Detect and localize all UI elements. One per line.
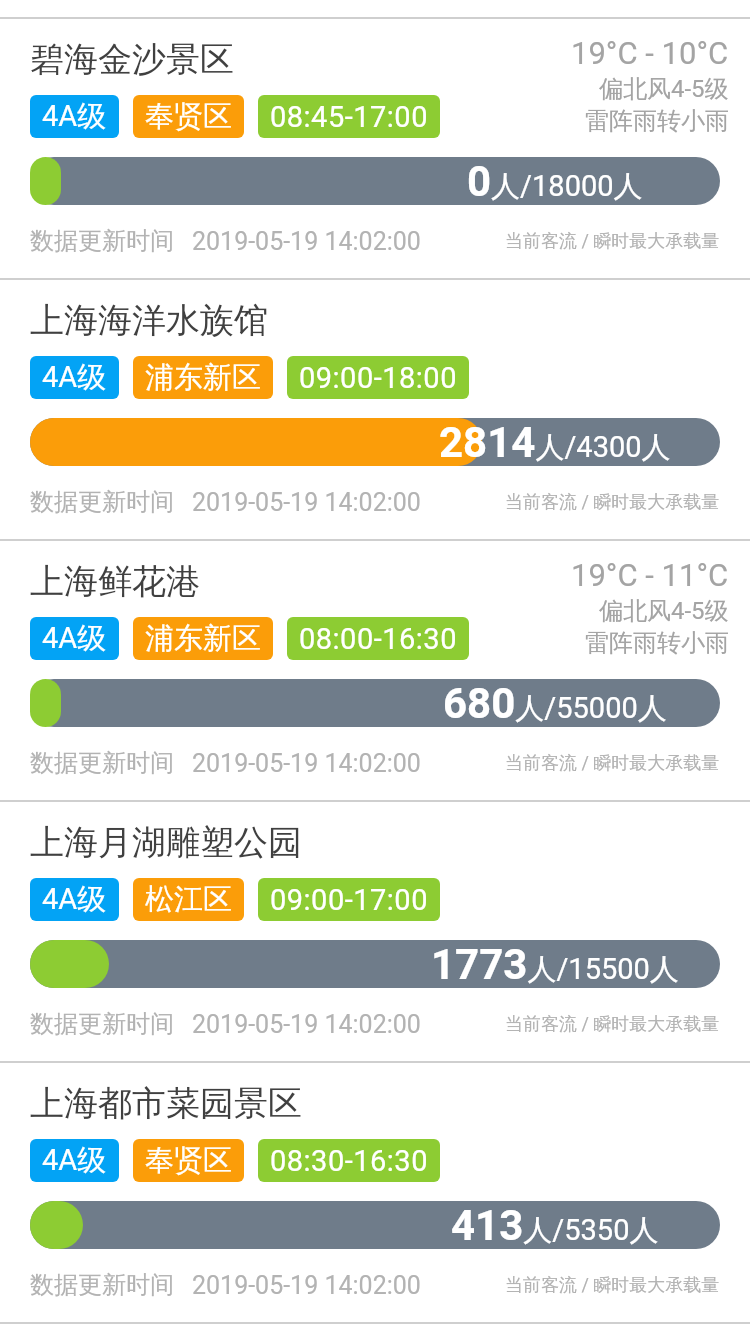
staticText: 碧海金沙景区 — [30, 38, 234, 81]
button[interactable]: 碧海金沙景区 — [0, 19, 750, 278]
button[interactable]: 松江区 — [133, 878, 244, 921]
staticText: 偏北风4-5级 — [599, 596, 729, 626]
staticText: 上海海洋水族馆 — [30, 299, 268, 342]
staticText: 08:00-16:30 — [299, 622, 457, 656]
staticText: 4A级 — [42, 98, 107, 135]
staticText: 1773人/15500人 — [431, 940, 679, 988]
staticText: 08:30-16:30 — [270, 1144, 428, 1178]
staticText: 19°C - 10°C — [571, 35, 729, 71]
staticText: 松江区 — [145, 881, 232, 918]
button[interactable]: 4A级 — [30, 1139, 119, 1182]
staticText: 2019-05-19 14:02:00 — [192, 749, 421, 778]
button[interactable]: 浦东新区 — [133, 356, 273, 399]
button[interactable]: 4A级 — [30, 95, 119, 138]
staticText: 偏北风4-5级 — [599, 74, 729, 104]
staticText: 19°C - 11°C — [571, 557, 729, 593]
staticText: 上海鲜花港 — [30, 560, 200, 603]
staticText: 上海月湖雕塑公园 — [30, 821, 302, 864]
button[interactable]: 09:00-17:00 — [258, 878, 440, 921]
button[interactable]: 上海月湖雕塑公园 — [0, 802, 750, 1061]
staticText: 413人/5350人 — [451, 1201, 659, 1249]
staticText: 09:00-17:00 — [270, 883, 428, 917]
other: 当前客流 680 人，最大承载量 55000 人 — [30, 679, 720, 727]
staticText: 2019-05-19 14:02:00 — [192, 227, 421, 256]
staticText: 浦东新区 — [145, 620, 261, 657]
button[interactable]: 08:30-16:30 — [258, 1139, 440, 1182]
staticText: 680人/55000人 — [443, 679, 667, 727]
staticText: 数据更新时间 — [30, 226, 174, 256]
staticText: 雷阵雨转小雨 — [585, 106, 729, 136]
button[interactable]: 浦东新区 — [133, 617, 273, 660]
staticText: 2019-05-19 14:02:00 — [192, 488, 421, 517]
staticText: 2814人/4300人 — [439, 418, 671, 466]
staticText: 当前客流 / 瞬时最大承载量 — [505, 1274, 720, 1297]
staticText: 数据更新时间 — [30, 487, 174, 517]
button[interactable]: 上海海洋水族馆 — [0, 280, 750, 539]
button[interactable]: 08:45-17:00 — [258, 95, 440, 138]
staticText: 4A级 — [42, 1142, 107, 1179]
button[interactable]: 4A级 — [30, 356, 119, 399]
staticText: 奉贤区 — [145, 1142, 232, 1179]
staticText: 0人/18000人 — [467, 157, 643, 205]
staticText: 2019-05-19 14:02:00 — [192, 1271, 421, 1300]
button[interactable]: 4A级 — [30, 878, 119, 921]
staticText: 4A级 — [42, 620, 107, 657]
button[interactable]: 08:00-16:30 — [287, 617, 469, 660]
staticText: 数据更新时间 — [30, 748, 174, 778]
other: 当前客流 1773 人，最大承载量 15500 人 — [30, 940, 720, 988]
button[interactable]: 上海都市菜园景区 — [0, 1063, 750, 1322]
staticText: 数据更新时间 — [30, 1270, 174, 1300]
staticText: 上海都市菜园景区 — [30, 1082, 302, 1125]
button[interactable]: 上海鲜花港 — [0, 541, 750, 800]
staticText: 当前客流 / 瞬时最大承载量 — [505, 1013, 720, 1036]
staticText: 浦东新区 — [145, 359, 261, 396]
staticText: 数据更新时间 — [30, 1009, 174, 1039]
staticText: 雷阵雨转小雨 — [585, 628, 729, 658]
button[interactable]: 奉贤区 — [133, 95, 244, 138]
staticText: 当前客流 / 瞬时最大承载量 — [505, 752, 720, 775]
staticText: 4A级 — [42, 359, 107, 396]
staticText: 2019-05-19 14:02:00 — [192, 1010, 421, 1039]
staticText: 4A级 — [42, 881, 107, 918]
button[interactable]: 奉贤区 — [133, 1139, 244, 1182]
button[interactable]: 4A级 — [30, 617, 119, 660]
staticText: 当前客流 / 瞬时最大承载量 — [505, 491, 720, 514]
staticText: 09:00-18:00 — [299, 361, 457, 395]
staticText: 奉贤区 — [145, 98, 232, 135]
other: 当前客流 413 人，最大承载量 5350 人 — [30, 1201, 720, 1249]
staticText: 当前客流 / 瞬时最大承载量 — [505, 230, 720, 253]
staticText: 08:45-17:00 — [270, 100, 428, 134]
other: 当前客流 2814 人，最大承载量 4300 人 — [30, 418, 720, 466]
other: 当前客流 0 人，最大承载量 18000 人 — [30, 157, 720, 205]
button[interactable]: 09:00-18:00 — [287, 356, 469, 399]
